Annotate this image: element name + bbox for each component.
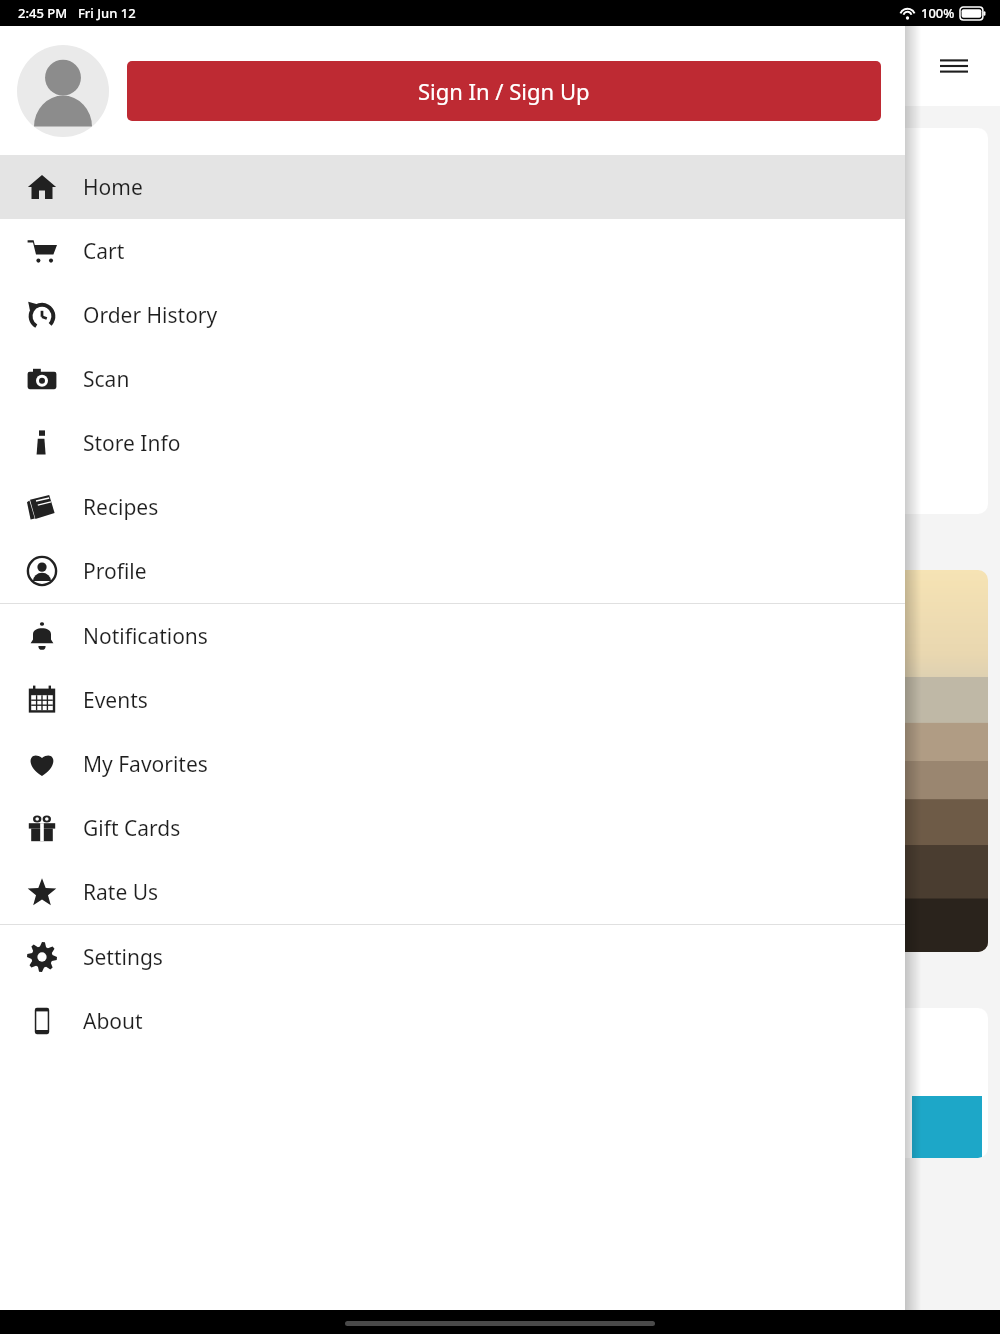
button[interactable]: Rate Us: [0, 860, 905, 924]
staticText: Sign In / Sign Up: [418, 76, 590, 106]
staticText: Rate Us: [83, 878, 159, 907]
staticText: Profile: [83, 557, 147, 586]
staticText: COUPONS: [22, 528, 129, 558]
staticText: Settings: [83, 943, 163, 972]
staticText: Notifications: [83, 622, 208, 651]
button[interactable]: Scan: [0, 347, 905, 411]
button[interactable]: Events: [0, 668, 905, 732]
staticText: Store Info: [83, 429, 181, 458]
button[interactable]: Open navigation menu: [930, 42, 978, 90]
button[interactable]: Order History: [0, 283, 905, 347]
button[interactable]: Profile picture: [17, 45, 109, 137]
staticText: 100%: [921, 4, 955, 22]
staticText: Order History: [83, 301, 218, 330]
button[interactable]: Sign In / Sign Up: [127, 61, 881, 121]
button[interactable]: Gift Cards: [0, 796, 905, 860]
staticText: Scan: [83, 365, 130, 394]
staticText: Fri Jun 12: [78, 4, 136, 22]
staticText: Home: [83, 173, 143, 202]
staticText: My Favorites: [83, 750, 208, 779]
staticText: Recipes: [83, 493, 159, 522]
button[interactable]: Store Info: [0, 411, 905, 475]
button[interactable]: Home: [0, 155, 905, 219]
staticText: About: [83, 1007, 143, 1036]
staticText: Cart: [83, 237, 125, 266]
button[interactable]: Profile: [0, 539, 905, 603]
button[interactable]: About: [0, 989, 905, 1053]
staticText: 2:45 PM: [18, 4, 68, 22]
button[interactable]: Recipes: [0, 475, 905, 539]
button[interactable]: Settings: [0, 925, 905, 989]
button[interactable]: My Favorites: [0, 732, 905, 796]
button[interactable]: Notifications: [0, 604, 905, 668]
staticText: Events: [83, 686, 148, 715]
staticText: Gift Cards: [83, 814, 181, 843]
button[interactable]: Cart: [0, 219, 905, 283]
staticText: NEW ITEMS: [22, 966, 142, 996]
